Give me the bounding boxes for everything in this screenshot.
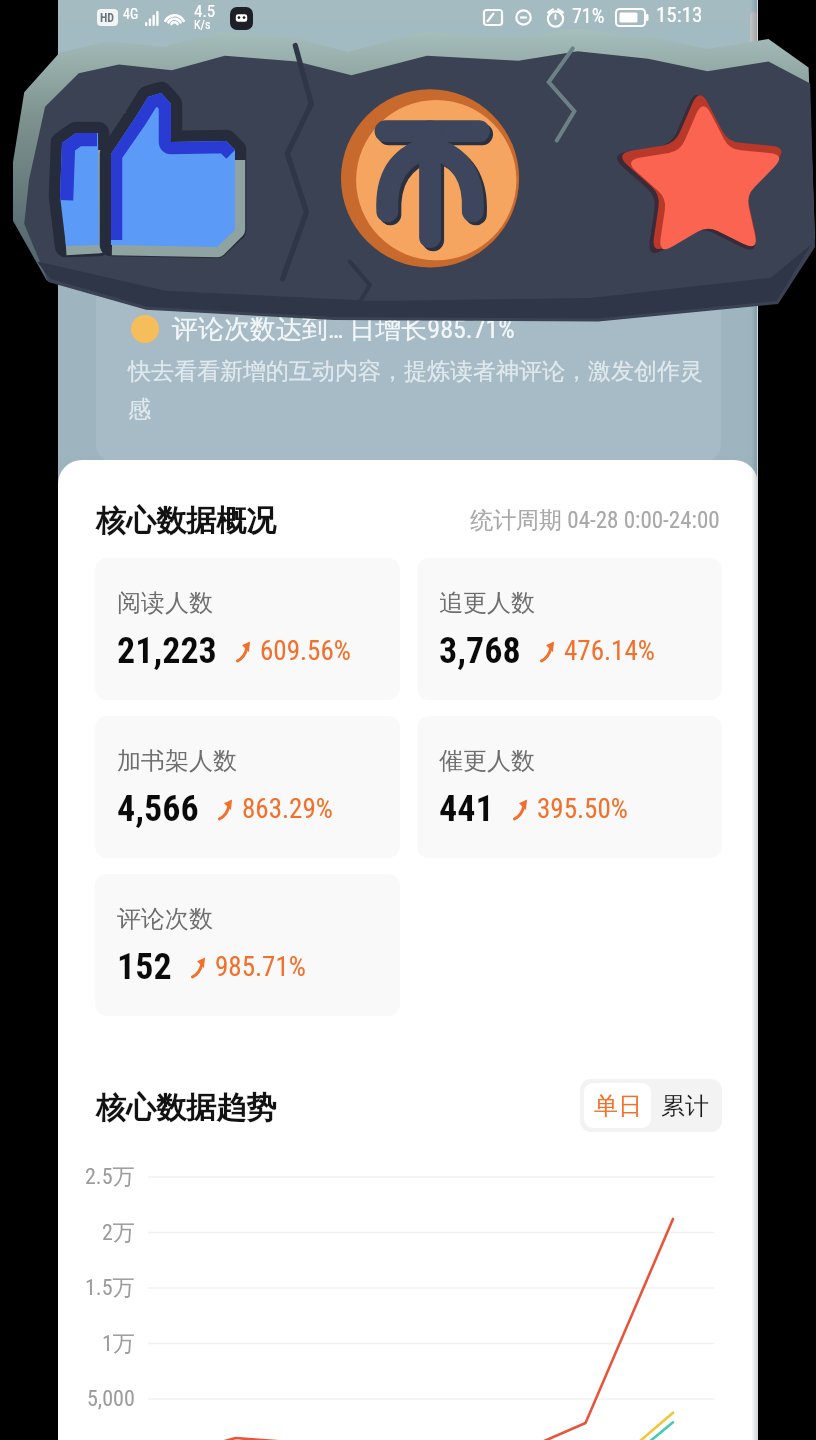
- staticText: 加书架人数: [117, 746, 237, 776]
- staticText: 2.5万: [85, 1163, 135, 1191]
- staticText: 1.5万: [85, 1274, 135, 1302]
- button[interactable]: 累计: [651, 1083, 718, 1128]
- button[interactable]: 评论次数: [95, 874, 400, 1016]
- staticText: 阅读人数: [117, 588, 213, 618]
- staticText: 快去看看新增的互动内容，提炼读者神评论，激发创作灵感: [128, 357, 713, 424]
- staticText: 152: [117, 946, 172, 988]
- staticText: 21,223: [117, 630, 217, 672]
- staticText: 985.71%: [215, 951, 306, 983]
- staticText: 单日: [594, 1091, 642, 1121]
- button[interactable]: 阅读人数: [95, 558, 400, 700]
- staticText: 71%: [572, 4, 605, 27]
- button[interactable]: 催更人数: [417, 716, 722, 858]
- staticText: 863.29%: [242, 793, 333, 825]
- staticText: 5,000: [87, 1386, 135, 1412]
- button[interactable]: 追更人数: [417, 558, 722, 700]
- staticText: 15:13: [656, 3, 703, 28]
- button[interactable]: 加书架人数: [95, 716, 400, 858]
- staticText: 核心数据概况: [96, 502, 276, 540]
- staticText: K/s: [194, 18, 211, 32]
- staticText: 评论次数达到… 日增长985.71%: [172, 313, 515, 346]
- staticText: 2万: [102, 1219, 135, 1247]
- staticText: 609.56%: [260, 635, 351, 667]
- staticText: 476.14%: [564, 635, 655, 667]
- staticText: 441: [439, 788, 494, 830]
- staticText: 核心数据趋势: [96, 1089, 276, 1127]
- staticText: 累计: [661, 1091, 709, 1121]
- button[interactable]: 单日: [584, 1083, 651, 1128]
- staticText: 4.5: [194, 1, 216, 21]
- staticText: HD: [100, 11, 115, 25]
- staticText: 4G: [123, 6, 139, 22]
- button[interactable]: App notification: [230, 7, 253, 30]
- staticText: 评论次数: [117, 904, 213, 934]
- staticText: 催更人数: [439, 746, 535, 776]
- staticText: 395.50%: [537, 793, 628, 825]
- staticText: 4,566: [117, 788, 199, 830]
- staticText: 追更人数: [439, 588, 535, 618]
- staticText: 1万: [102, 1330, 135, 1358]
- staticText: 3,768: [439, 630, 521, 672]
- staticText: 统计周期 04-28 0:00-24:00: [470, 506, 720, 535]
